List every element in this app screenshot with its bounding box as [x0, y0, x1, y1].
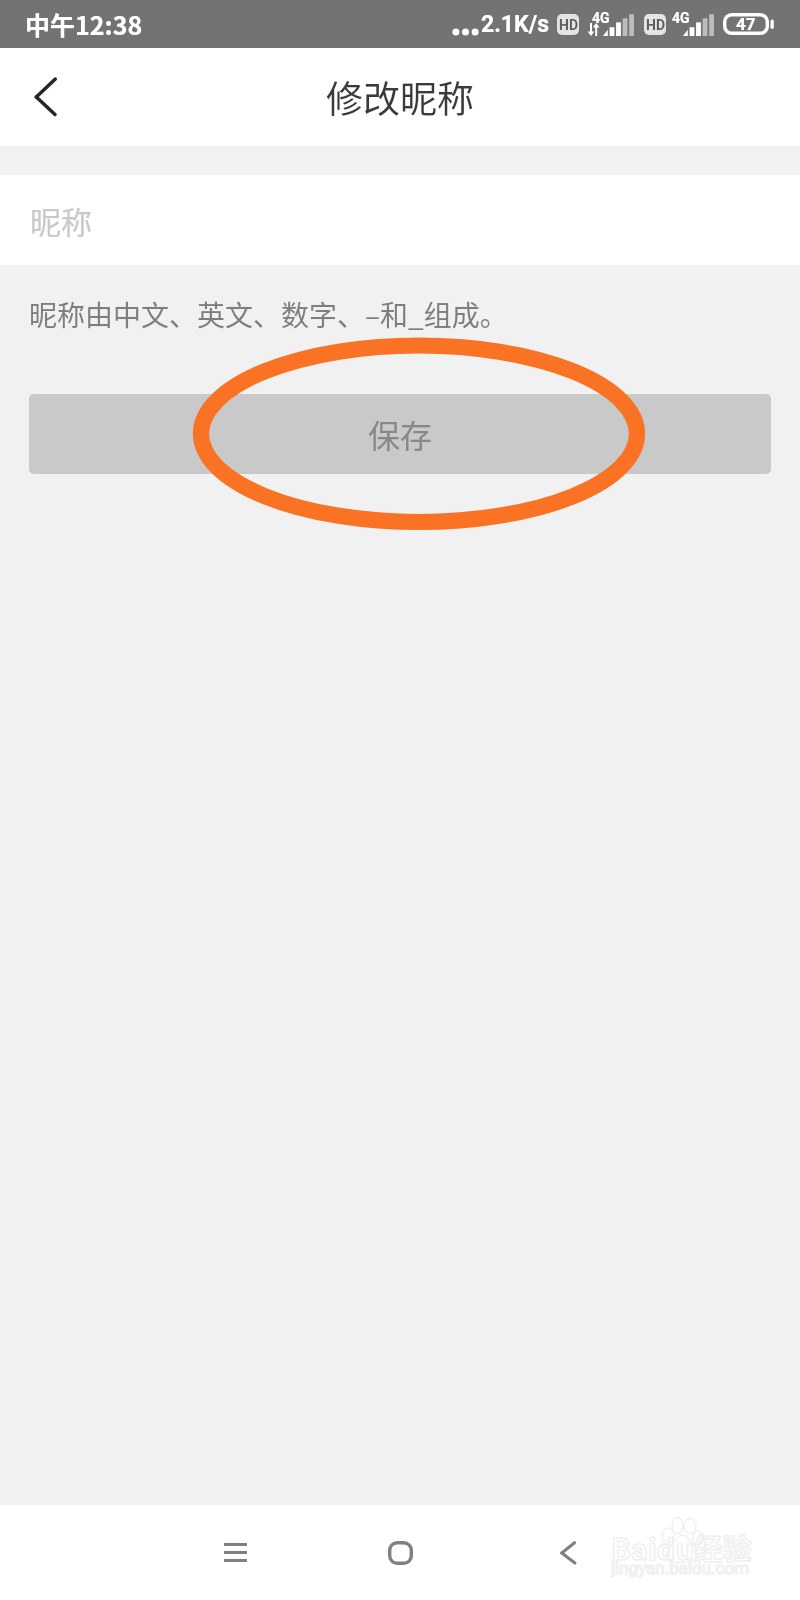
button[interactable]: Recent apps — [187, 1505, 283, 1600]
staticText: 4G — [592, 10, 610, 26]
staticText: HD — [559, 17, 578, 33]
button[interactable]: Back — [521, 1505, 617, 1600]
staticText: 47 — [736, 14, 756, 34]
staticText: 4G — [672, 10, 690, 26]
staticText: 保存 — [368, 411, 433, 457]
staticText: HD — [646, 17, 665, 33]
staticText: 中午12:38 — [25, 6, 143, 42]
staticText: 2.1K/s — [481, 11, 550, 38]
staticText: 修改昵称 — [326, 70, 474, 124]
button[interactable]: Back — [0, 48, 96, 146]
staticText: 昵称由中文、英文、数字、–和_组成。 — [29, 294, 508, 335]
button[interactable]: 昵称 — [0, 175, 800, 265]
staticText: jingyan.baidu.com — [611, 1558, 750, 1578]
staticText: 昵称 — [30, 198, 92, 243]
button[interactable]: 保存 — [29, 394, 771, 474]
button[interactable]: Home — [352, 1505, 448, 1600]
staticText: Baidu经验 — [611, 1526, 752, 1568]
